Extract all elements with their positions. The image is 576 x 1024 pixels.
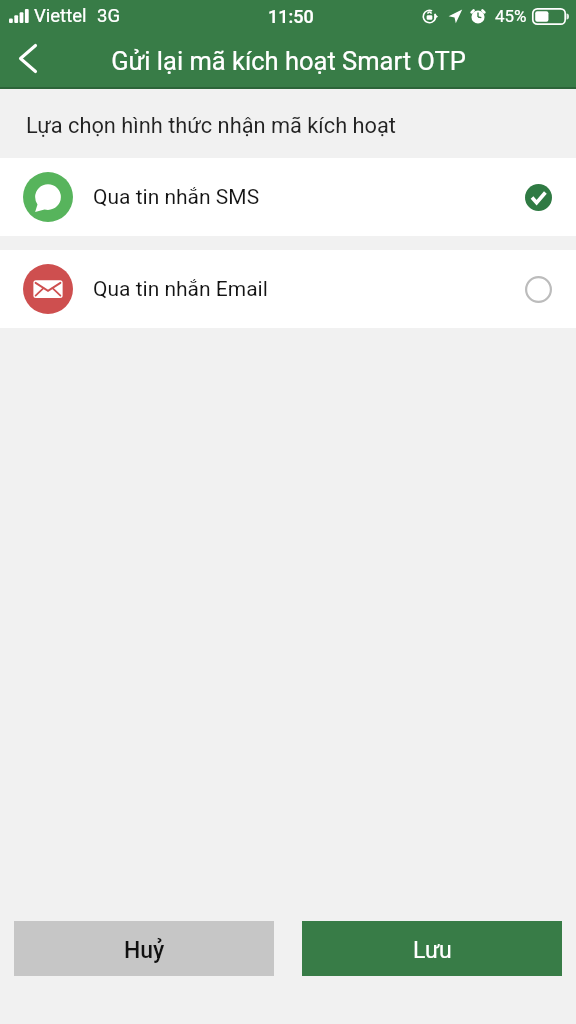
button[interactable]: Back <box>0 33 56 89</box>
staticText: Gửi lại mã kích hoạt Smart OTP <box>111 46 466 76</box>
staticText: Lựa chọn hình thức nhận mã kích hoạt <box>26 113 397 139</box>
staticText: 3G <box>97 5 120 27</box>
staticText: Huỷ <box>124 937 165 964</box>
staticText: 11:50 <box>268 6 314 27</box>
staticText: Qua tin nhắn SMS <box>93 185 260 210</box>
staticText: Viettel <box>34 5 87 27</box>
staticText: 45% <box>495 6 527 26</box>
button[interactable]: Qua tin nhắn Email <box>0 250 576 328</box>
button[interactable]: Huỷ <box>14 921 274 976</box>
staticText: Qua tin nhắn Email <box>93 277 268 302</box>
button[interactable]: Lưu <box>302 921 562 976</box>
staticText: Lưu <box>413 937 452 964</box>
button[interactable]: Qua tin nhắn SMS <box>0 158 576 236</box>
